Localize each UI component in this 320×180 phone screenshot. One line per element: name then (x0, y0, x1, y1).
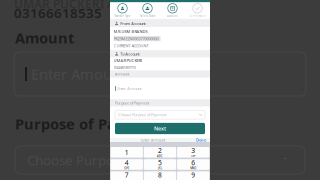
staticText: PK29MEZN0003770000000 (114, 36, 159, 41)
staticText: 03166618535 (14, 4, 102, 22)
staticText: Choose Purpose of Payment (27, 151, 202, 169)
staticText: Next (154, 125, 166, 132)
staticText: M/S USM BRANDS (114, 29, 148, 34)
button[interactable]: Done (196, 137, 210, 143)
staticText: 1 (125, 148, 129, 157)
staticText: MNO (190, 167, 196, 170)
staticText: 5 (158, 158, 162, 167)
staticText: To Account (120, 51, 139, 56)
staticText: From Account (120, 21, 145, 26)
button[interactable]: 2 (144, 147, 176, 158)
staticText: 2 (158, 146, 162, 155)
staticText: 6 (191, 158, 195, 167)
button[interactable]: 4 (111, 159, 143, 170)
staticText: CURRENT ACCOUNT (114, 43, 149, 48)
staticText: Enter Amount (31, 64, 126, 84)
staticText: 3 (191, 146, 195, 155)
button[interactable]: 1 (111, 147, 143, 158)
button[interactable]: 3 (177, 147, 209, 158)
staticText: Account (167, 14, 178, 18)
button[interactable]: Next (115, 123, 205, 134)
staticText: UMAR PUCKERI ACCOUNT (14, 0, 164, 12)
staticText: Amount (115, 71, 129, 77)
staticText: DEF (191, 154, 195, 158)
staticText: Enter Amount (141, 137, 165, 143)
staticText: Select Bank (140, 14, 155, 18)
staticText: Transfer Type (114, 14, 131, 18)
staticText: Amount (15, 28, 74, 47)
staticText: Choose Purpose of Payment (118, 112, 166, 117)
staticText: GHI (124, 167, 129, 170)
staticText: UMAR PUCKERI (114, 58, 142, 63)
staticText: 03448189710 (114, 65, 136, 70)
staticText: ABC (157, 154, 163, 158)
button[interactable]: 5 (144, 159, 176, 170)
button[interactable]: 9 (177, 171, 209, 180)
staticText: Purpose of Payment (15, 114, 163, 133)
staticText: 7 (125, 170, 129, 179)
staticText: Enter Amount (117, 86, 141, 91)
staticText: 4 (125, 158, 129, 167)
button[interactable]: 6 (177, 159, 209, 170)
staticText: JKL (158, 167, 162, 170)
staticText: Purpose of Payment (115, 100, 149, 106)
staticText: Done (196, 137, 206, 143)
button[interactable]: 8 (144, 171, 176, 180)
staticText: 9 (191, 170, 195, 179)
staticText: Confirmation (188, 14, 206, 18)
button[interactable]: 7 (111, 171, 143, 180)
staticText: 8 (158, 170, 162, 179)
